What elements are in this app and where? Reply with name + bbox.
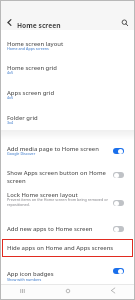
staticText: Hide apps on Home and Apps screens: [7, 244, 127, 252]
button[interactable]: Home screen layout: [0, 30, 135, 54]
button[interactable]: Add media page to Home screen: [0, 140, 135, 162]
button[interactable]: Home: [45, 285, 90, 296]
staticText: 4x5: [7, 95, 108, 100]
staticText: App icon badges: [7, 270, 108, 278]
staticText: Home screen: [17, 21, 61, 30]
staticText: Home screen grid: [7, 64, 108, 72]
staticText: Show Apps screen button on Home screen: [7, 169, 108, 185]
staticText: 4x5: [7, 70, 108, 75]
button[interactable]: Show Apps screen button on Home screen: [0, 163, 135, 187]
button[interactable]: Switch off: [113, 226, 124, 232]
staticText: Home screen layout: [7, 40, 108, 48]
button[interactable]: Add new apps to Home screen: [0, 219, 135, 238]
button[interactable]: Home screen grid: [0, 55, 135, 79]
button[interactable]: Apps screen grid: [0, 80, 135, 104]
staticText: Prevent items on the Home screen from be…: [7, 197, 115, 207]
staticText: Add new apps to Home screen: [7, 225, 108, 233]
button[interactable]: Hide apps on Home and Apps screens: [0, 239, 135, 257]
button[interactable]: Navigate up: [2, 15, 17, 30]
button[interactable]: Switch on: [113, 268, 124, 274]
button[interactable]: Search: [117, 15, 132, 30]
staticText: Add media page to Home screen: [7, 145, 108, 153]
staticText: Lock Home screen layout: [7, 191, 108, 199]
button[interactable]: Recent apps: [0, 285, 45, 296]
staticText: Home and Apps screens: [7, 46, 108, 51]
button[interactable]: Lock Home screen layout: [0, 187, 135, 218]
button[interactable]: Switch off: [113, 172, 124, 178]
staticText: Show with numbers: [7, 277, 108, 282]
staticText: Apps screen grid: [7, 89, 108, 97]
button[interactable]: Switch off: [113, 200, 124, 206]
button[interactable]: App icon badges: [0, 258, 135, 284]
button[interactable]: Back: [90, 285, 135, 296]
staticText: Folder grid: [7, 114, 108, 122]
button[interactable]: Switch on: [113, 148, 124, 154]
staticText: Google Discover: [7, 151, 108, 156]
button[interactable]: Folder grid: [0, 105, 135, 129]
staticText: 3x4: [7, 120, 108, 125]
